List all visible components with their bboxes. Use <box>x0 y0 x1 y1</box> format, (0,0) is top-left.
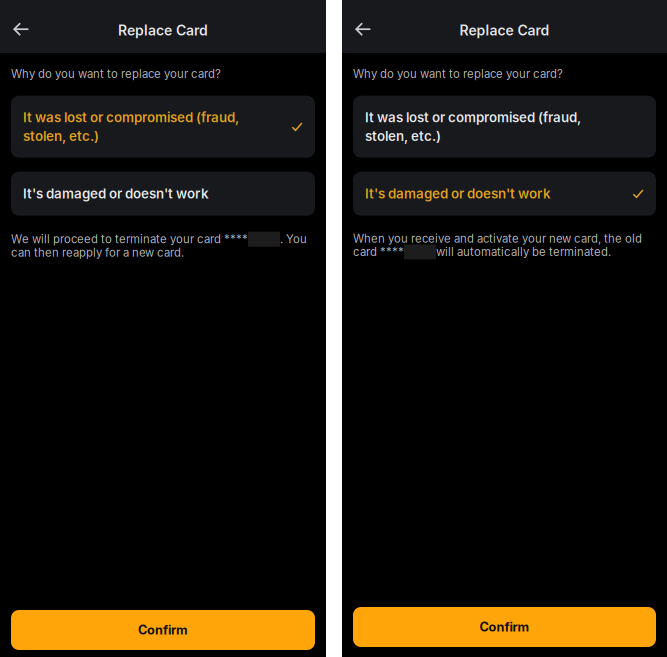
staticText: Why do you want to replace your card? <box>353 67 563 81</box>
button[interactable]: It was lost or compromised (fraud, <box>353 96 656 158</box>
staticText: stolen, etc.) <box>365 128 441 144</box>
staticText: It was lost or compromised (fraud, <box>23 109 239 125</box>
staticText: Confirm <box>138 622 188 638</box>
staticText: Replace Card <box>459 22 549 39</box>
button[interactable]: It was lost or compromised (fraud, <box>11 96 315 158</box>
button[interactable]: Confirm <box>353 607 656 647</box>
button[interactable]: It's damaged or doesn't work <box>353 172 656 216</box>
staticText: Why do you want to replace your card? <box>11 67 221 81</box>
staticText: We will proceed to terminate your card *… <box>11 232 248 246</box>
staticText: It's damaged or doesn't work <box>23 186 209 202</box>
staticText: Confirm <box>479 619 529 635</box>
button[interactable]: It's damaged or doesn't work <box>11 172 315 216</box>
button[interactable]: Confirm <box>11 610 315 650</box>
staticText: will automatically be terminated. <box>436 245 611 259</box>
staticText: stolen, etc.) <box>23 128 99 144</box>
staticText: When you receive and activate your new c… <box>353 232 642 245</box>
staticText: can then reapply for a new card. <box>11 246 184 259</box>
staticText: . You <box>280 232 307 246</box>
button[interactable]: Back <box>0 13 39 45</box>
button[interactable]: Back <box>342 13 381 45</box>
staticText: Replace Card <box>118 22 208 39</box>
staticText: It was lost or compromised (fraud, <box>365 109 581 125</box>
staticText: It's damaged or doesn't work <box>365 186 551 202</box>
staticText: card **** <box>353 245 404 259</box>
